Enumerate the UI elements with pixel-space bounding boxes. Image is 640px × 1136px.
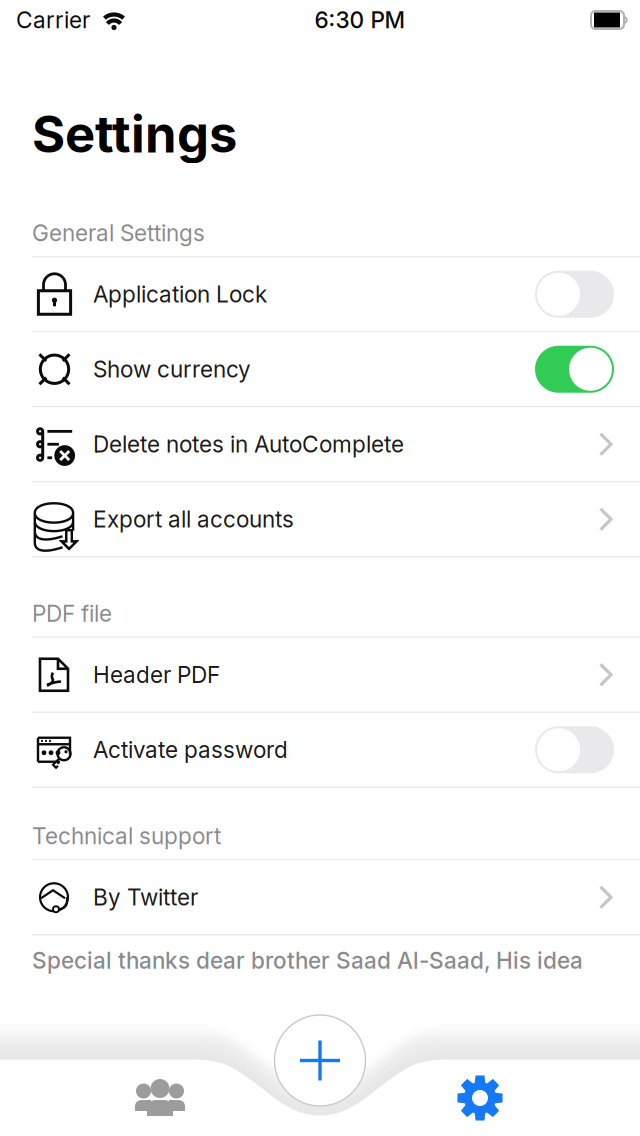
button[interactable]: Application Lock [0, 257, 640, 331]
staticText: By Twitter [93, 884, 198, 911]
staticText: General Settings [32, 220, 205, 246]
staticText: Export all accounts [93, 506, 294, 533]
staticText: Show currency [93, 356, 251, 383]
button[interactable]: Activate password [0, 713, 640, 786]
staticText: Carrier [16, 7, 90, 33]
staticText: 6:30 PM [314, 7, 405, 33]
staticText: Delete notes in AutoComplete [93, 431, 404, 458]
button[interactable]: By Twitter [0, 860, 640, 934]
staticText: Application Lock [93, 281, 267, 308]
staticText: PDF file [32, 600, 112, 627]
button[interactable]: Add [270, 1010, 370, 1110]
staticText: Settings [32, 104, 237, 164]
staticText: Header PDF [93, 661, 220, 688]
button[interactable]: Export all accounts [0, 482, 640, 556]
button[interactable]: Settings [360, 1060, 600, 1136]
button[interactable]: Delete notes in AutoComplete [0, 407, 640, 481]
staticText: Activate password [93, 736, 288, 763]
button[interactable]: Accounts [40, 1060, 280, 1136]
staticText: Technical support [32, 823, 221, 849]
button[interactable]: Header PDF [0, 638, 640, 711]
staticText: Special thanks dear brother Saad Al-Saad… [32, 947, 583, 974]
button[interactable]: Show currency [0, 332, 640, 406]
